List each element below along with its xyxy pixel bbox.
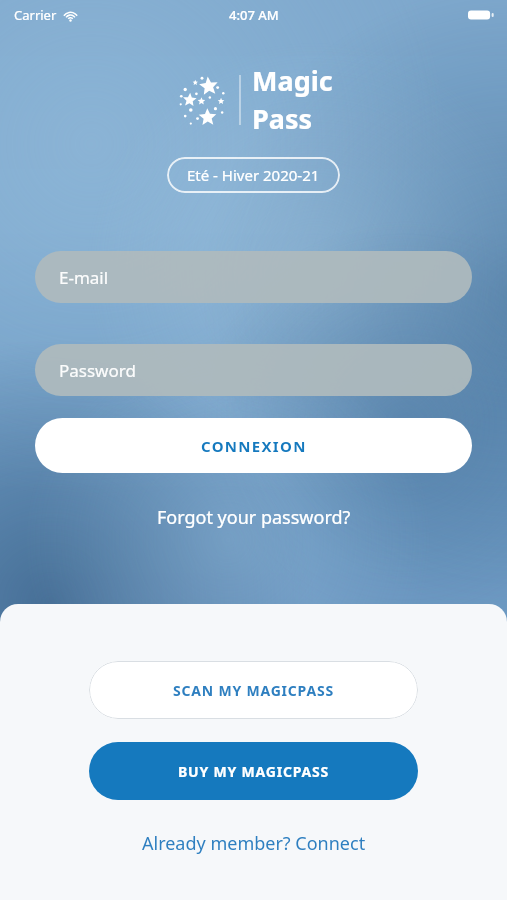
staticText: BUY MY MAGICPASS [178, 762, 329, 781]
staticText: CONNEXION [201, 436, 307, 456]
button[interactable]: BUY MY MAGICPASS [89, 742, 418, 800]
button[interactable]: CONNEXION [35, 418, 472, 473]
staticText: Forgot your password? [157, 505, 351, 530]
button[interactable]: E-mail [35, 251, 472, 303]
button[interactable]: Forgot your password? [147, 501, 361, 534]
staticText: Password [59, 359, 136, 382]
staticText: Magic [252, 62, 333, 99]
staticText: SCAN MY MAGICPASS [173, 681, 334, 700]
staticText: Carrier [14, 6, 57, 24]
button[interactable]: Already member? Connect [130, 826, 378, 861]
staticText: E-mail [59, 266, 109, 289]
staticText: Pass [252, 100, 313, 137]
staticText: Eté - Hiver 2020-21 [187, 165, 320, 185]
staticText: 4:07 AM [229, 6, 279, 24]
button[interactable]: Eté - Hiver 2020-21 [167, 157, 340, 193]
button[interactable]: SCAN MY MAGICPASS [89, 661, 418, 719]
staticText: Already member? Connect [142, 831, 366, 856]
button[interactable]: Password [35, 344, 472, 396]
